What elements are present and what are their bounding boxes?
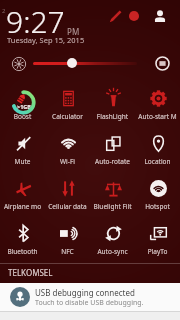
button[interactable]: Bluetooth	[0, 215, 45, 260]
staticText: FlashLight	[90, 112, 135, 121]
staticText: Calculator	[45, 112, 90, 121]
staticText: Bluetooth	[0, 247, 45, 256]
staticText: Auto-sync	[90, 247, 135, 256]
staticText: 9:27	[6, 1, 65, 42]
staticText: Cellular data	[45, 202, 90, 211]
button[interactable]: Bluelight Filt	[90, 170, 135, 215]
button[interactable]: Brightness	[11, 56, 26, 71]
staticText: 2	[2, 7, 6, 15]
button[interactable]: Location	[135, 125, 180, 170]
staticText: NFC	[45, 247, 90, 256]
staticText: Wi-Fi	[45, 157, 90, 166]
button[interactable]: Auto-sync	[90, 215, 135, 260]
button[interactable]	[33, 62, 137, 65]
staticText: TELKOMSEL	[8, 267, 53, 278]
staticText: Tuesday, Sep 15, 2015	[7, 35, 85, 45]
button[interactable]: Edit	[107, 8, 123, 24]
staticText: Hotspot	[135, 202, 180, 211]
staticText: Mute	[0, 157, 45, 166]
button[interactable]: User profile	[152, 8, 168, 24]
button[interactable]: Wi-Fi	[45, 125, 90, 170]
button[interactable]: FlashLight	[90, 80, 135, 125]
button[interactable]: PlayTo	[135, 215, 180, 260]
staticText: PlayTo	[135, 247, 180, 256]
button[interactable]: Settings	[126, 8, 142, 24]
button[interactable]: Auto-start M	[135, 80, 180, 125]
button[interactable]: Calculator	[45, 80, 90, 125]
button[interactable]: Hotspot	[135, 170, 180, 215]
staticText: >1GB	[17, 103, 31, 110]
button[interactable]: >1GB	[0, 80, 45, 125]
button[interactable]: Auto-rotate	[90, 125, 135, 170]
staticText: Location	[135, 157, 180, 166]
button[interactable]: USB debugging connected	[0, 283, 180, 311]
staticText: Airplane mo	[0, 202, 45, 211]
staticText: Boost	[0, 112, 45, 121]
staticText: Touch to disable USB debugging.	[35, 298, 144, 308]
button[interactable]: Auto brightness	[155, 56, 169, 70]
staticText: Auto-rotate	[90, 157, 135, 166]
staticText: PM	[67, 26, 80, 37]
button[interactable]: NFC	[45, 215, 90, 260]
staticText: Bluelight Filt	[90, 202, 135, 211]
button[interactable]: Airplane mo	[0, 170, 45, 215]
button[interactable]: Cellular data	[45, 170, 90, 215]
staticText: USB debugging connected	[35, 287, 135, 298]
staticText: Auto-start M	[135, 112, 180, 121]
button[interactable]: Mute	[0, 125, 45, 170]
